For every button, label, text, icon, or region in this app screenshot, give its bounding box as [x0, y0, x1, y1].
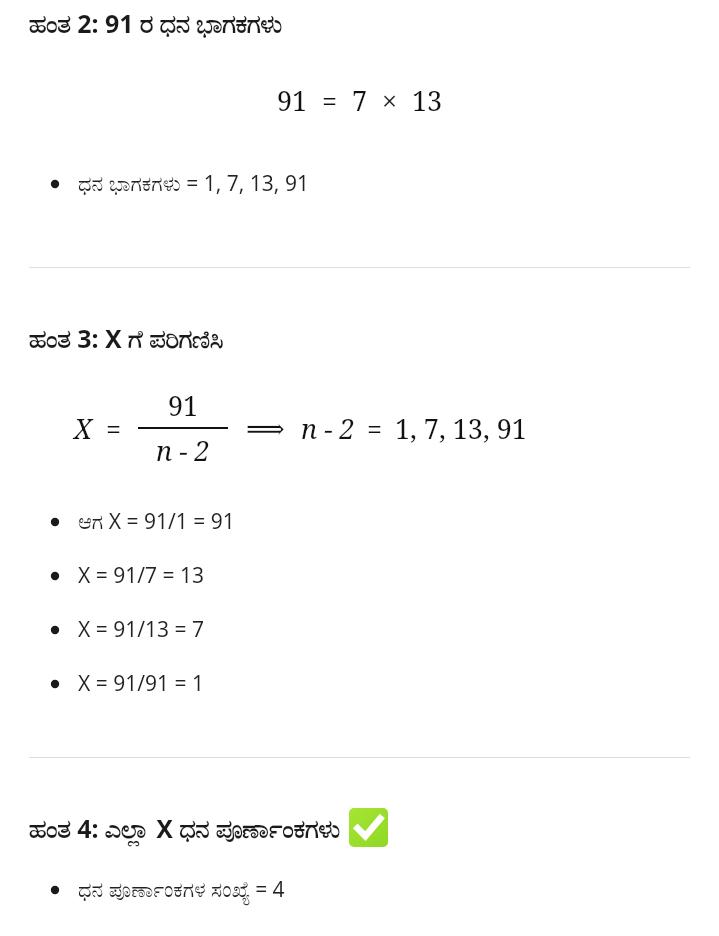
- staticText: n − 2: [301, 410, 355, 447]
- staticText: X = 91/13 = 7: [78, 615, 205, 644]
- staticText: ⟹: [246, 413, 285, 444]
- button[interactable]: ಹಂತ 2: 91 ರ ಧನ ಭಾಗಕಗಳು: [0, 6, 719, 40]
- staticText: X = 91/91 = 1: [78, 669, 205, 698]
- staticText: X = 91/7 = 13: [78, 561, 205, 590]
- other: Check mark: [349, 808, 388, 847]
- button[interactable]: ಧನ ಪೂರ್ಣಾಂಕಗಳ ಸಂಖ್ಯೆ = 4: [0, 869, 719, 910]
- staticText: ಹಂತ 4: ಎಲ್ಲಾ X ಧನ ಪೂರ್ಣಾಂಕಗಳು: [29, 811, 340, 845]
- staticText: X: [74, 410, 92, 447]
- staticText: n − 2: [156, 432, 210, 469]
- staticText: 13: [412, 82, 443, 119]
- staticText: =: [106, 410, 122, 447]
- staticText: =: [367, 410, 383, 447]
- button[interactable]: ಧನ ಭಾಗಕಗಳು = 1, 7, 13, 91: [0, 163, 719, 204]
- button[interactable]: X = 91/13 = 7: [0, 609, 719, 650]
- staticText: 91: [168, 387, 199, 424]
- button[interactable]: X = 91/91 = 1: [0, 663, 719, 704]
- button[interactable]: ಹಂತ 4: ಎಲ್ಲಾ X ಧನ ಪೂರ್ಣಾಂಕಗಳು: [0, 808, 719, 847]
- staticText: =: [322, 82, 338, 119]
- staticText: ×: [382, 82, 398, 119]
- button[interactable]: X = 91/7 = 13: [0, 555, 719, 596]
- staticText: 7: [352, 82, 368, 119]
- staticText: 1, 7, 13, 91: [395, 410, 527, 447]
- staticText: ಆಗ X = 91/1 = 91: [78, 507, 235, 536]
- staticText: ಧನ ಭಾಗಕಗಳು = 1, 7, 13, 91: [78, 169, 309, 198]
- button[interactable]: ಆಗ X = 91/1 = 91: [0, 501, 719, 542]
- staticText: ಧನ ಪೂರ್ಣಾಂಕಗಳ ಸಂಖ್ಯೆ = 4: [78, 875, 285, 904]
- staticText: 91: [277, 82, 308, 119]
- button[interactable]: ಹಂತ 3: X ಗೆ ಪರಿಗಣಿಸಿ: [0, 321, 719, 355]
